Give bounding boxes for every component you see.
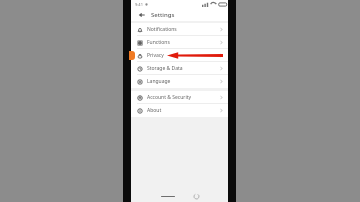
staticText: Language bbox=[147, 78, 171, 85]
staticText: Storage & Data bbox=[147, 65, 183, 72]
button[interactable]: Functions bbox=[131, 36, 228, 49]
button[interactable]: About bbox=[131, 104, 228, 117]
button[interactable]: Storage & Data bbox=[131, 62, 228, 75]
button[interactable]: Back bbox=[137, 10, 147, 20]
staticText: Functions bbox=[147, 39, 170, 46]
button[interactable]: Account & Security bbox=[131, 91, 228, 104]
button[interactable]: Language bbox=[131, 75, 228, 88]
staticText: Notifications bbox=[147, 26, 177, 33]
staticText: Account & Security bbox=[147, 94, 192, 101]
button[interactable]: Back bbox=[191, 191, 201, 201]
button[interactable]: Notifications bbox=[131, 23, 228, 36]
staticText: Settings bbox=[151, 11, 175, 19]
staticText: 9:41 bbox=[135, 2, 143, 7]
button[interactable]: Home bbox=[157, 192, 179, 200]
button[interactable]: Privacy bbox=[131, 49, 228, 62]
staticText: Privacy bbox=[147, 52, 164, 59]
staticText: About bbox=[147, 107, 162, 114]
